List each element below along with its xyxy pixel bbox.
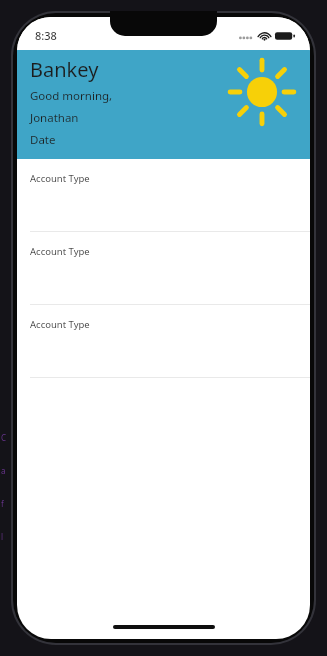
staticText: Good morning, xyxy=(30,88,113,104)
staticText: Account Type xyxy=(30,318,90,331)
staticText: C xyxy=(1,432,7,443)
button[interactable]: Account Type xyxy=(17,159,310,232)
staticText: Bankey xyxy=(30,56,99,83)
staticText: a xyxy=(1,465,6,476)
staticText: l xyxy=(1,531,4,542)
other: Sunny weather xyxy=(227,57,297,127)
staticText: Jonathan xyxy=(30,110,79,126)
staticText: f xyxy=(1,498,4,509)
staticText: Account Type xyxy=(30,245,90,258)
staticText: 8:38 xyxy=(35,28,57,43)
button[interactable]: Account Type xyxy=(17,232,310,305)
staticText: Date xyxy=(30,132,56,148)
button[interactable]: Account Type xyxy=(17,305,310,378)
staticText: Account Type xyxy=(30,172,90,185)
